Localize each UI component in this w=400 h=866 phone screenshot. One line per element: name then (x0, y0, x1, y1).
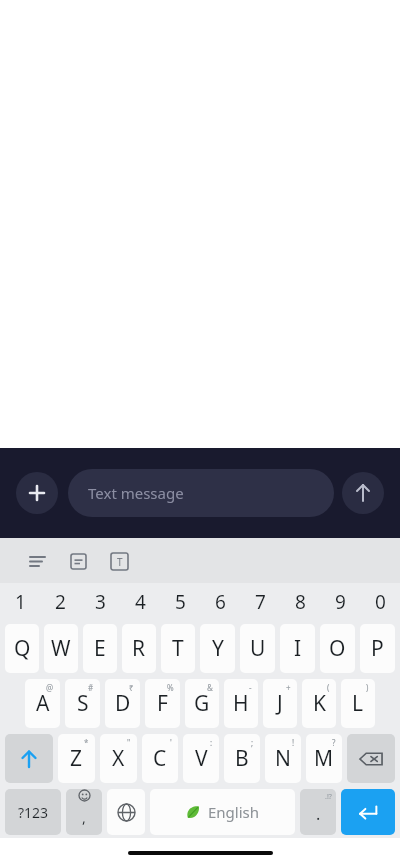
button[interactable]: Text message (68, 469, 334, 517)
button[interactable]: J (263, 679, 297, 728)
staticText: : (210, 737, 213, 748)
staticText: G (194, 689, 210, 718)
staticText: L (352, 689, 364, 718)
button[interactable]: B (224, 734, 260, 783)
button[interactable]: D (105, 679, 140, 728)
staticText: English (208, 802, 260, 822)
staticText: ' (170, 737, 172, 748)
button[interactable]: I (280, 624, 315, 673)
button[interactable]: .!? (300, 789, 336, 835)
staticText: # (88, 682, 94, 693)
button[interactable]: Emoji (66, 789, 102, 835)
button[interactable]: Menu (22, 546, 52, 576)
staticText: F (157, 689, 168, 718)
staticText: * (84, 737, 89, 748)
button[interactable]: K (302, 679, 336, 728)
staticText: 4 (135, 589, 146, 615)
button[interactable]: N (265, 734, 301, 783)
staticText: A (36, 689, 50, 718)
staticText: 7 (255, 589, 266, 615)
button[interactable]: H (224, 679, 258, 728)
button[interactable]: W (44, 624, 78, 673)
staticText: R (132, 634, 146, 663)
staticText: B (235, 744, 249, 773)
staticText: + (286, 682, 291, 693)
staticText: ; (251, 737, 254, 748)
staticText: E (94, 634, 106, 663)
button[interactable]: 4 (120, 583, 160, 621)
button[interactable]: P (360, 624, 395, 673)
button[interactable]: 6 (200, 583, 240, 621)
staticText: & (207, 682, 213, 693)
staticText: P (371, 634, 384, 663)
staticText: ) (366, 682, 369, 693)
button[interactable]: ?123 (5, 789, 61, 835)
staticText: ₹ (129, 682, 134, 693)
button[interactable]: U (240, 624, 275, 673)
button[interactable]: R (122, 624, 156, 673)
button[interactable]: X (100, 734, 137, 783)
button[interactable]: 0 (360, 583, 400, 621)
button[interactable]: V (183, 734, 219, 783)
staticText: Z (70, 744, 83, 773)
button[interactable]: Shift (5, 734, 53, 783)
staticText: X (112, 744, 125, 773)
staticText: % (167, 682, 174, 693)
button[interactable]: Change language (107, 789, 145, 835)
button[interactable]: Y (200, 624, 235, 673)
button[interactable]: C (142, 734, 178, 783)
staticText: Y (212, 634, 224, 663)
button[interactable]: Enter (341, 789, 395, 835)
staticText: H (233, 689, 249, 718)
staticText: 5 (175, 589, 186, 615)
staticText: . (316, 803, 321, 825)
staticText: @ (46, 682, 54, 693)
staticText: V (195, 744, 208, 773)
button[interactable]: Q (5, 624, 39, 673)
staticText: 8 (295, 589, 306, 615)
staticText: , (82, 808, 86, 827)
button[interactable]: S (65, 679, 100, 728)
staticText: Q (14, 634, 31, 663)
button[interactable]: Attach (16, 472, 58, 514)
button[interactable]: 5 (160, 583, 200, 621)
button[interactable]: T (161, 624, 195, 673)
staticText: ! (292, 737, 295, 748)
button[interactable]: E (83, 624, 117, 673)
button[interactable]: 7 (240, 583, 280, 621)
button[interactable]: 3 (80, 583, 120, 621)
staticText: 3 (95, 589, 106, 615)
button[interactable]: G (185, 679, 219, 728)
staticText: K (313, 689, 326, 718)
staticText: U (250, 634, 266, 663)
staticText: 6 (215, 589, 226, 615)
staticText: 9 (335, 589, 346, 615)
button[interactable]: F (145, 679, 180, 728)
staticText: O (329, 634, 346, 663)
staticText: ( (327, 682, 330, 693)
button[interactable]: 8 (280, 583, 320, 621)
staticText: 2 (55, 589, 66, 615)
button[interactable]: Z (58, 734, 95, 783)
button[interactable]: O (320, 624, 355, 673)
staticText: 0 (375, 589, 386, 615)
button[interactable]: Send (342, 472, 384, 514)
button[interactable]: M (306, 734, 342, 783)
staticText: T (117, 555, 123, 569)
staticText: N (275, 744, 291, 773)
button[interactable]: Text style (104, 546, 134, 576)
staticText: - (249, 682, 252, 693)
staticText: C (153, 744, 167, 773)
staticText: T (172, 634, 184, 663)
button[interactable]: 9 (320, 583, 360, 621)
staticText: ?123 (18, 803, 49, 822)
button[interactable]: 1 (0, 583, 40, 621)
button[interactable]: 2 (40, 583, 80, 621)
button[interactable]: L (341, 679, 375, 728)
staticText: D (115, 689, 131, 718)
button[interactable]: English (150, 789, 295, 835)
button[interactable]: Backspace (347, 734, 395, 783)
button[interactable]: Clipboard (63, 546, 93, 576)
staticText: M (314, 744, 334, 773)
button[interactable]: A (25, 679, 60, 728)
